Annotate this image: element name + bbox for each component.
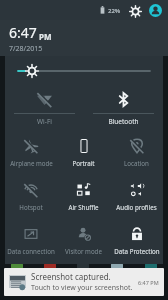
staticText: Wi-Fi (37, 117, 52, 126)
button[interactable]: Brightness (5, 56, 163, 86)
staticText: 6:47 PM (138, 279, 159, 286)
staticText: Data Protection (114, 247, 160, 255)
staticText: PM (39, 31, 52, 42)
button[interactable]: Airplane mode (5, 130, 57, 174)
button[interactable]: Visitor mode (57, 218, 110, 262)
button[interactable]: Data connection (5, 218, 57, 262)
staticText: Airplane mode (10, 159, 53, 167)
button[interactable]: Switch user (148, 3, 163, 18)
staticText: Bluetooth (108, 117, 139, 126)
button[interactable]: Hotspot (5, 174, 57, 218)
staticText: Audio profiles (116, 203, 157, 211)
staticText: 7/28/2015 (9, 44, 43, 54)
button[interactable]: Location (110, 130, 163, 174)
staticText: Screenshot captured. (31, 271, 111, 282)
button[interactable]: Air Shuffle (57, 174, 110, 218)
staticText: 22% (108, 7, 121, 15)
button[interactable]: Wi-Fi (14, 86, 75, 130)
button[interactable]: Portrait (57, 130, 110, 174)
button[interactable]: Screenshot captured. (4, 268, 164, 296)
button[interactable]: Audio profiles (110, 174, 163, 218)
staticText: Portrait (72, 159, 95, 167)
staticText: Air Shuffle (68, 203, 99, 211)
staticText: Location (124, 159, 149, 167)
button[interactable]: Settings (128, 4, 142, 18)
button[interactable]: Bluetooth (93, 86, 154, 130)
staticText: Hotspot (19, 203, 43, 211)
staticText: Touch to view your screenshot. (31, 283, 133, 293)
staticText: Visitor mode (65, 247, 102, 255)
staticText: 6:47 (9, 23, 37, 42)
staticText: Data connection (7, 247, 55, 255)
button[interactable]: Data Protection (110, 218, 163, 262)
